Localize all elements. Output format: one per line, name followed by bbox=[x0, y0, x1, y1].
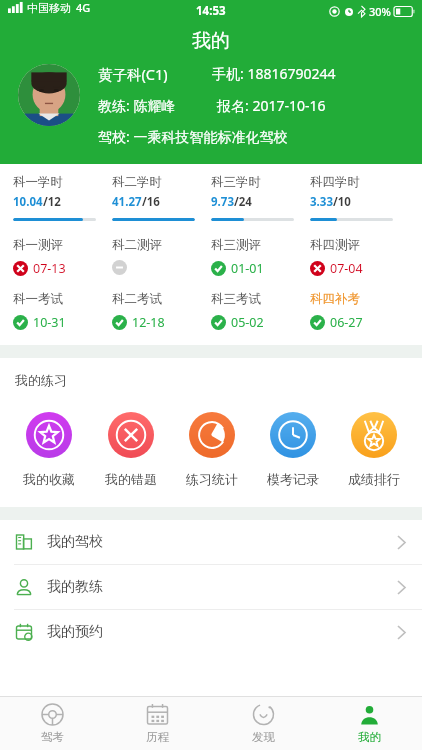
staticText: 发现 bbox=[252, 730, 275, 744]
staticText: 06-27 bbox=[330, 314, 363, 331]
staticText: 我的驾校 bbox=[47, 533, 103, 551]
staticText: /12 bbox=[43, 194, 61, 210]
button[interactable]: 发现 bbox=[210, 697, 316, 750]
staticText: 成绩排行 bbox=[348, 471, 400, 487]
staticText: 科三测评 bbox=[211, 237, 261, 253]
staticText: 30% bbox=[369, 4, 391, 19]
button[interactable]: 练习统计 bbox=[171, 410, 252, 489]
staticText: 手机: 18816790244 bbox=[212, 64, 336, 83]
staticText: 科二考试 bbox=[112, 291, 162, 307]
button[interactable]: 驾考 bbox=[0, 697, 105, 750]
staticText: 教练: 陈耀峰 bbox=[98, 96, 176, 115]
staticText: 我的收藏 bbox=[23, 471, 75, 487]
staticText: 01-01 bbox=[231, 260, 264, 277]
staticText: 练习统计 bbox=[186, 471, 238, 487]
button[interactable]: 模考记录 bbox=[252, 410, 333, 489]
button[interactable]: 历程 bbox=[105, 697, 210, 750]
staticText: 黄子科(C1) bbox=[98, 64, 168, 84]
staticText: /16 bbox=[142, 194, 160, 210]
staticText: 我的错题 bbox=[105, 471, 157, 487]
staticText: 12-18 bbox=[132, 314, 165, 331]
staticText: 报名: 2017-10-16 bbox=[217, 96, 326, 115]
staticText: 14:53 bbox=[196, 3, 226, 19]
staticText: 10.04 bbox=[13, 194, 43, 210]
staticText: 科一学时 bbox=[13, 174, 63, 190]
staticText: 驾校: 一乘科技智能标准化驾校 bbox=[98, 127, 288, 146]
staticText: 10-31 bbox=[33, 314, 66, 331]
button[interactable]: 我的预约 bbox=[0, 610, 422, 654]
staticText: 我的教练 bbox=[47, 578, 103, 596]
staticText: 我的预约 bbox=[47, 623, 103, 641]
staticText: 3.33 bbox=[310, 194, 333, 210]
staticText: 科三考试 bbox=[211, 291, 261, 307]
staticText: 科四学时 bbox=[310, 174, 360, 190]
staticText: 科一考试 bbox=[13, 291, 63, 307]
staticText: 我的练习 bbox=[15, 372, 67, 388]
staticText: 历程 bbox=[146, 730, 169, 744]
staticText: 中国移动 bbox=[27, 1, 71, 15]
staticText: 科二测评 bbox=[112, 237, 162, 253]
staticText: 我的 bbox=[192, 29, 230, 53]
button[interactable]: 我的 bbox=[316, 697, 422, 750]
staticText: 科一测评 bbox=[13, 237, 63, 253]
staticText: 4G bbox=[76, 0, 91, 15]
staticText: 驾考 bbox=[41, 730, 64, 744]
staticText: /24 bbox=[234, 194, 252, 210]
staticText: 07-13 bbox=[33, 260, 66, 277]
staticText: 科四测评 bbox=[310, 237, 360, 253]
staticText: 41.27 bbox=[112, 194, 142, 210]
button[interactable]: 我的驾校 bbox=[0, 520, 422, 564]
button[interactable]: 我的收藏 bbox=[8, 410, 90, 489]
staticText: /10 bbox=[333, 194, 351, 210]
staticText: 科二学时 bbox=[112, 174, 162, 190]
staticText: 05-02 bbox=[231, 314, 264, 331]
staticText: 07-04 bbox=[330, 260, 363, 277]
staticText: 9.73 bbox=[211, 194, 234, 210]
button[interactable]: 我的教练 bbox=[0, 565, 422, 609]
staticText: 科四补考 bbox=[310, 291, 360, 307]
button[interactable]: 我的错题 bbox=[90, 410, 171, 489]
button[interactable]: 成绩排行 bbox=[333, 410, 414, 489]
staticText: 我的 bbox=[358, 730, 381, 744]
staticText: 科三学时 bbox=[211, 174, 261, 190]
staticText: 模考记录 bbox=[267, 471, 319, 487]
